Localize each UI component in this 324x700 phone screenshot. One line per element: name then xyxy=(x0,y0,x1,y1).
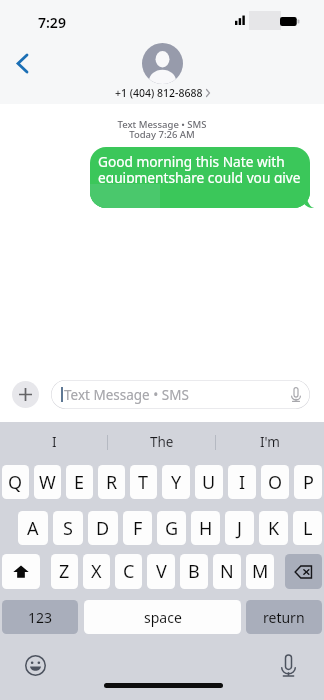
staticText: Q xyxy=(8,470,23,495)
button[interactable]: P xyxy=(294,465,322,499)
button[interactable]: N xyxy=(213,554,241,589)
staticText: return xyxy=(263,608,305,627)
staticText: E xyxy=(74,470,85,495)
button[interactable]: 123 xyxy=(2,600,78,634)
button[interactable]: D xyxy=(88,511,118,545)
button[interactable]: Emoji keyboard xyxy=(22,652,48,678)
button[interactable]: return xyxy=(246,600,322,634)
button[interactable]: K xyxy=(259,511,288,545)
staticText: D xyxy=(96,516,110,541)
button[interactable]: I xyxy=(0,422,108,458)
button[interactable]: H xyxy=(191,511,220,545)
button[interactable]: T xyxy=(130,465,157,499)
staticText: T xyxy=(138,470,149,495)
staticText: S xyxy=(63,516,73,541)
staticText: Text Message • SMS xyxy=(64,386,189,404)
staticText: I xyxy=(52,433,57,451)
button[interactable]: Add attachment xyxy=(12,381,39,408)
staticText: Y xyxy=(171,470,182,495)
button[interactable]: Shift xyxy=(2,554,40,589)
button[interactable]: I xyxy=(228,465,256,499)
staticText: O xyxy=(268,470,283,495)
staticText: M xyxy=(252,559,269,584)
staticText: A xyxy=(27,516,39,541)
button[interactable]: R xyxy=(98,465,125,499)
staticText: Z xyxy=(59,559,70,584)
staticText: X xyxy=(91,559,102,584)
button[interactable] xyxy=(142,43,183,84)
staticText: C xyxy=(123,559,135,584)
button[interactable]: I'm xyxy=(216,422,324,458)
staticText: U xyxy=(202,470,216,495)
staticText: The xyxy=(150,433,174,451)
button[interactable]: Dictation xyxy=(275,652,301,678)
staticText: L xyxy=(303,516,313,541)
button[interactable]: Q xyxy=(2,465,29,499)
staticText: I xyxy=(239,470,246,495)
staticText: Good morning this Nate with equipmentsha… xyxy=(98,152,301,187)
staticText: R xyxy=(106,470,118,495)
staticText: J xyxy=(237,516,242,541)
staticText: W xyxy=(39,470,56,495)
staticText: space xyxy=(144,608,182,627)
button[interactable]: Y xyxy=(162,465,190,499)
staticText: I'm xyxy=(260,433,280,451)
staticText: 123 xyxy=(28,608,53,627)
button[interactable]: E xyxy=(66,465,93,499)
button[interactable]: J xyxy=(225,511,254,545)
button[interactable]: Back xyxy=(9,50,35,76)
button[interactable]: X xyxy=(83,554,110,589)
staticText: Text Message • SMS Today 7:26 AM xyxy=(117,118,207,140)
button[interactable]: The xyxy=(108,422,216,458)
button[interactable]: G xyxy=(157,511,186,545)
staticText: F xyxy=(133,516,143,541)
button[interactable]: V xyxy=(147,554,175,589)
button[interactable]: space xyxy=(84,600,241,634)
button[interactable]: Z xyxy=(51,554,78,589)
button[interactable]: A xyxy=(18,511,48,545)
button[interactable]: O xyxy=(261,465,289,499)
button[interactable]: S xyxy=(53,511,83,545)
button[interactable]: Text Message • SMS xyxy=(51,380,310,409)
button[interactable]: U xyxy=(195,465,223,499)
staticText: +1 (404) 812-8688 xyxy=(115,86,203,100)
staticText: 7:29 xyxy=(38,13,66,32)
staticText: N xyxy=(220,559,234,584)
button[interactable]: Good morning this Nate with equipmentsha… xyxy=(90,147,310,208)
staticText: H xyxy=(199,516,213,541)
staticText: K xyxy=(268,516,280,541)
staticText: G xyxy=(165,516,179,541)
staticText: V xyxy=(156,559,167,584)
button[interactable]: F xyxy=(123,511,152,545)
button[interactable]: M xyxy=(246,554,274,589)
button[interactable]: L xyxy=(293,511,322,545)
staticText: P xyxy=(303,470,314,495)
button[interactable]: W xyxy=(34,465,61,499)
button[interactable]: Backspace xyxy=(285,554,322,589)
button[interactable]: B xyxy=(180,554,208,589)
staticText: B xyxy=(188,559,200,584)
button[interactable]: C xyxy=(115,554,142,589)
